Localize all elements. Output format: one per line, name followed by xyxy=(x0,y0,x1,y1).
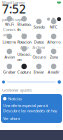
button[interactable]: Noticias xyxy=(1,94,62,123)
staticText: NFC xyxy=(50,24,58,29)
staticText: Oscuro xyxy=(32,54,45,59)
staticText: Descubre las novedades de hoy xyxy=(3,108,57,113)
staticText: Captura xyxy=(17,69,31,74)
staticText: Activos xyxy=(32,44,45,50)
staticText: Bluetooth xyxy=(17,21,31,32)
button[interactable]: Anadir xyxy=(46,63,61,78)
button[interactable]: Enviar xyxy=(31,63,46,78)
staticText: Sonido xyxy=(33,24,44,29)
staticText: Noticias xyxy=(8,96,22,101)
button[interactable]: Datos xyxy=(31,33,46,48)
staticText: Linterna xyxy=(2,39,16,44)
button[interactable]: Linterna xyxy=(2,33,17,48)
staticText: jue., 26 sept. xyxy=(2,17,23,22)
staticText: Una oferta especial para ti xyxy=(3,103,48,108)
button[interactable]: Wi-Fi xyxy=(2,18,17,33)
staticText: Wi-Fi xyxy=(5,21,14,27)
staticText: 7:52 xyxy=(2,1,26,17)
button[interactable]: Rotacion xyxy=(17,33,32,48)
button[interactable]: Ubicacion xyxy=(17,48,32,63)
button[interactable]: Ahorro xyxy=(46,33,61,48)
staticText: Ver ahora xyxy=(3,116,20,121)
button[interactable]: Ajustes xyxy=(52,18,55,21)
staticText: Ubicacion xyxy=(17,51,31,62)
button[interactable]: Sonido xyxy=(31,18,46,33)
staticText: Gestionar ajustes xyxy=(2,87,32,93)
staticText: Ahorro xyxy=(47,39,60,44)
button[interactable]: Gestionar ajustes xyxy=(0,86,63,94)
staticText: Conectada xyxy=(3,27,16,37)
staticText: Enviar xyxy=(33,69,44,74)
button[interactable]: Cuenta xyxy=(57,17,61,21)
button[interactable]: Avion xyxy=(2,48,17,63)
button[interactable]: Captura xyxy=(17,63,32,78)
staticText: Zona xyxy=(50,54,58,59)
staticText: Movil Lorem xyxy=(2,0,25,5)
button[interactable]: Bluetooth xyxy=(17,18,32,33)
button[interactable]: Grabar xyxy=(2,63,17,78)
staticText: No xyxy=(22,32,27,37)
staticText: Avion xyxy=(4,54,14,59)
staticText: Datos xyxy=(34,39,44,44)
button[interactable]: Usuarios xyxy=(47,18,50,21)
button[interactable]: Oscuro xyxy=(31,48,46,63)
button[interactable]: NFC xyxy=(46,18,61,33)
staticText: Rotacion xyxy=(17,39,31,44)
button[interactable]: Zona xyxy=(46,48,61,63)
staticText: Anadir xyxy=(48,69,60,74)
staticText: Auto xyxy=(20,44,28,50)
staticText: Grabar xyxy=(3,69,16,74)
